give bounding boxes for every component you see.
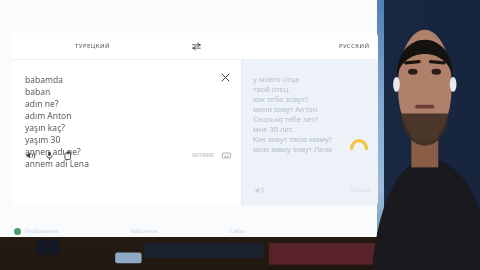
staticText: 00/10000 — [192, 152, 214, 159]
staticText: yaşım 30 — [25, 134, 61, 146]
button[interactable]: РУССКИЙ — [258, 33, 378, 59]
button[interactable]: Прослушать — [23, 148, 37, 162]
button[interactable]: Прослушать перевод — [252, 183, 266, 197]
button[interactable]: Копировать — [61, 148, 75, 162]
button[interactable]: Поменять языки — [185, 35, 207, 57]
staticText: как тебя зовут? — [253, 94, 308, 104]
staticText: Сайты — [230, 228, 246, 235]
staticText: Перевод — [351, 187, 370, 193]
button[interactable]: Голосовой ввод — [42, 148, 56, 162]
staticText: Как зовут твою маму? — [253, 134, 333, 144]
staticText: babamda — [25, 74, 63, 86]
staticText: мне 30 лет. — [253, 124, 294, 134]
staticText: РУССКИЙ — [339, 42, 370, 50]
staticText: yaşın kaç? — [25, 122, 65, 134]
staticText: Сколько тебе лет? — [253, 114, 319, 124]
staticText: baban — [25, 86, 51, 98]
staticText: annem adi Lena — [25, 158, 89, 170]
staticText: мою маму зовут Лена — [253, 144, 333, 154]
button[interactable]: Клавиатура — [220, 149, 233, 162]
staticText: annen adı ne? — [25, 146, 81, 158]
staticText: Изображение — [25, 228, 59, 235]
staticText: ТУРЕЦКИЙ — [75, 42, 110, 50]
staticText: adın ne? — [25, 98, 59, 110]
staticText: твой отец — [253, 84, 289, 94]
button[interactable]: Очистить — [217, 69, 233, 85]
staticText: меня зовут Антон — [253, 104, 318, 114]
staticText: у моего отца — [253, 74, 300, 84]
staticText: adım Anton — [25, 110, 72, 122]
button[interactable]: ТУРЕЦКИЙ — [12, 33, 172, 59]
staticText: Избранное — [131, 228, 158, 235]
